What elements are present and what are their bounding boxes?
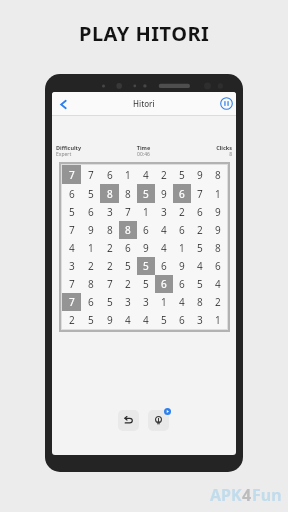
button[interactable]: 1 [155, 293, 173, 311]
button[interactable]: 8 [81, 275, 100, 293]
button[interactable]: 6 [100, 165, 119, 184]
button[interactable]: 3 [137, 293, 155, 311]
button[interactable]: 8 [119, 184, 137, 203]
button[interactable]: 4 [62, 239, 81, 257]
staticText: 5 [143, 187, 149, 201]
button[interactable]: 8 [100, 184, 119, 203]
button[interactable]: 2 [119, 275, 137, 293]
button[interactable]: 9 [137, 239, 155, 257]
button[interactable]: 4 [209, 275, 227, 293]
button[interactable]: 2 [209, 293, 227, 311]
button[interactable]: 5 [137, 257, 155, 275]
button[interactable]: 5 [173, 165, 191, 184]
button[interactable]: 9 [173, 257, 191, 275]
button[interactable]: 2 [155, 165, 173, 184]
button[interactable]: 5 [137, 275, 155, 293]
button[interactable]: 8 [209, 165, 227, 184]
button[interactable]: 6 [173, 221, 191, 239]
button[interactable]: 1 [209, 184, 227, 203]
staticText: 6 [215, 259, 221, 273]
button[interactable]: 7 [62, 275, 81, 293]
button[interactable]: 5 [62, 203, 81, 221]
button[interactable]: 8 [100, 221, 119, 239]
button[interactable]: 6 [209, 257, 227, 275]
button[interactable]: 1 [209, 311, 227, 329]
button[interactable]: 4 [119, 311, 137, 329]
button[interactable]: 3 [62, 257, 81, 275]
button[interactable]: 7 [62, 293, 81, 311]
button[interactable]: 7 [81, 165, 100, 184]
button[interactable]: 9 [81, 221, 100, 239]
staticText: 8 [215, 241, 221, 255]
button[interactable]: 4 [155, 221, 173, 239]
button[interactable]: 5 [137, 184, 155, 203]
button[interactable]: Back [54, 95, 72, 113]
staticText: 4 [69, 241, 75, 255]
button[interactable]: 6 [173, 275, 191, 293]
button[interactable]: 8 [119, 221, 137, 239]
button[interactable]: 2 [100, 257, 119, 275]
button[interactable]: 2 [191, 221, 209, 239]
button[interactable]: 7 [62, 165, 81, 184]
button[interactable]: 4 [137, 165, 155, 184]
button[interactable]: 1 [81, 239, 100, 257]
staticText: 6 [161, 259, 167, 273]
button[interactable]: 7 [62, 221, 81, 239]
button[interactable]: 5 [119, 257, 137, 275]
staticText: 7 [69, 168, 75, 182]
button[interactable]: 4 [137, 311, 155, 329]
button[interactable]: 9 [155, 184, 173, 203]
button[interactable]: 1 [119, 165, 137, 184]
button[interactable]: 7 [191, 184, 209, 203]
button[interactable]: 2 [173, 203, 191, 221]
button[interactable]: 9 [100, 311, 119, 329]
button[interactable]: 3 [119, 293, 137, 311]
button[interactable]: 5 [191, 275, 209, 293]
button[interactable]: Undo [118, 410, 139, 431]
staticText: 4 [242, 484, 252, 506]
button[interactable]: 3 [100, 203, 119, 221]
button[interactable]: 6 [173, 184, 191, 203]
button[interactable]: 6 [81, 203, 100, 221]
button[interactable]: 2 [81, 257, 100, 275]
button[interactable]: 9 [209, 203, 227, 221]
button[interactable]: 2 [100, 239, 119, 257]
button[interactable]: 6 [191, 203, 209, 221]
button[interactable]: 9 [191, 165, 209, 184]
button[interactable]: 6 [137, 221, 155, 239]
button[interactable]: 4 [155, 239, 173, 257]
staticText: 1 [125, 168, 131, 182]
button[interactable]: 7 [119, 203, 137, 221]
button[interactable]: 6 [155, 275, 173, 293]
staticText: 2 [179, 205, 185, 219]
button[interactable]: 2 [62, 311, 81, 329]
staticText: 4 [179, 295, 185, 309]
button[interactable]: Hint [148, 410, 169, 431]
button[interactable]: 7 [100, 275, 119, 293]
button[interactable]: 5 [81, 311, 100, 329]
button[interactable]: 4 [173, 293, 191, 311]
button[interactable]: 5 [100, 293, 119, 311]
button[interactable]: 9 [209, 221, 227, 239]
button[interactable]: 6 [62, 184, 81, 203]
button[interactable]: 6 [119, 239, 137, 257]
button[interactable]: 1 [173, 239, 191, 257]
button[interactable]: 5 [81, 184, 100, 203]
staticText: 5 [107, 295, 113, 309]
staticText: 2 [88, 259, 94, 273]
button[interactable]: 6 [173, 311, 191, 329]
button[interactable]: 3 [191, 311, 209, 329]
staticText: 1 [161, 295, 167, 309]
button[interactable]: 1 [137, 203, 155, 221]
staticText: 2 [197, 223, 203, 237]
button[interactable]: 3 [155, 203, 173, 221]
button[interactable]: 8 [191, 293, 209, 311]
button[interactable]: 4 [191, 257, 209, 275]
staticText: 4 [161, 241, 167, 255]
button[interactable]: Pause [220, 97, 233, 110]
button[interactable]: 5 [191, 239, 209, 257]
button[interactable]: 6 [81, 293, 100, 311]
button[interactable]: 5 [155, 311, 173, 329]
button[interactable]: 8 [209, 239, 227, 257]
button[interactable]: 6 [155, 257, 173, 275]
